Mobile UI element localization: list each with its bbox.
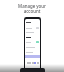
staticText: Manage your account [18,3,46,14]
